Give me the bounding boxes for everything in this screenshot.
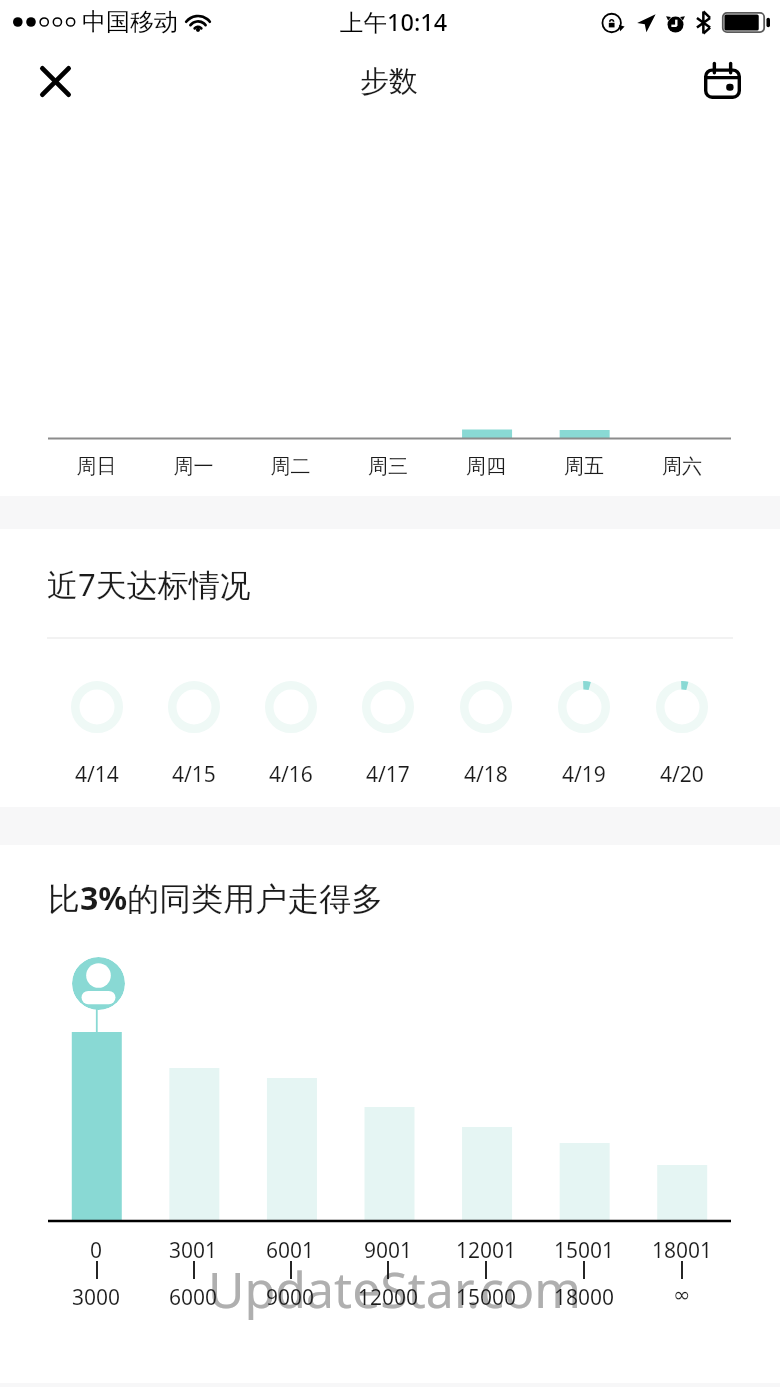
button[interactable]: 周二	[242, 454, 339, 479]
button[interactable]: 4/18	[437, 681, 535, 789]
staticText: 4/18	[464, 760, 508, 789]
staticText: 近7天达标情况	[47, 563, 251, 605]
staticText: 4/16	[269, 760, 313, 789]
button[interactable]: Calendar	[688, 49, 756, 113]
staticText: 18000	[554, 1283, 615, 1312]
staticText: 15001	[554, 1236, 615, 1265]
staticText: 6000	[169, 1283, 218, 1312]
staticText: ∞	[673, 1283, 691, 1307]
button[interactable]: Close	[19, 49, 91, 113]
staticText: 步数	[360, 63, 418, 100]
button[interactable]: 4/14	[48, 681, 145, 789]
staticText: 9001	[364, 1236, 413, 1265]
staticText: 4/14	[75, 760, 119, 789]
staticText: 12000	[358, 1283, 419, 1312]
staticText: 12001	[456, 1236, 517, 1265]
staticText: 4/15	[172, 760, 216, 789]
button[interactable]: 4/15	[145, 681, 242, 789]
staticText: 3000	[72, 1283, 121, 1312]
button[interactable]: 周四	[437, 454, 535, 479]
staticText: 3001	[169, 1236, 218, 1265]
staticText: 4/17	[366, 760, 410, 789]
staticText: 比3%的同类用户走得多	[48, 876, 384, 920]
staticText: 4/20	[660, 760, 704, 789]
staticText: 4/19	[562, 760, 606, 789]
button[interactable]: 4/20	[633, 681, 731, 789]
button[interactable]: 4/19	[535, 681, 633, 789]
staticText: 中国移动	[82, 7, 178, 37]
staticText: 18001	[652, 1236, 713, 1265]
staticText: UpdateStar.com	[208, 1255, 581, 1323]
button[interactable]: 周六	[633, 454, 731, 479]
staticText: 0	[90, 1236, 103, 1265]
button[interactable]: 4/16	[242, 681, 339, 789]
button[interactable]: 4/17	[339, 681, 437, 789]
staticText: 15000	[456, 1283, 517, 1312]
staticText: 6001	[266, 1236, 315, 1265]
staticText: 9000	[266, 1283, 315, 1312]
button[interactable]: 周五	[535, 454, 633, 479]
button[interactable]: 周一	[145, 454, 242, 479]
button[interactable]: 周日	[48, 454, 145, 479]
button[interactable]: 周三	[339, 454, 437, 479]
staticText: 上午10:14	[340, 6, 448, 38]
